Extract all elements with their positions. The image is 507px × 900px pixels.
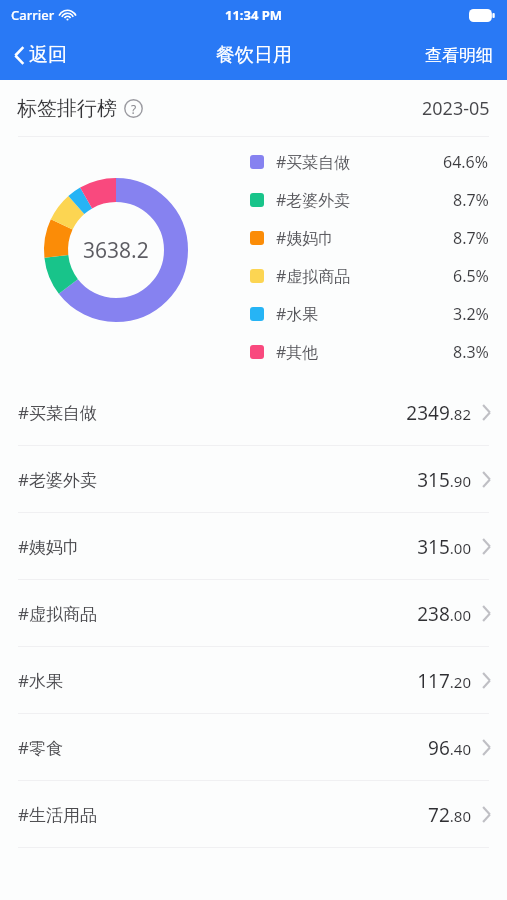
staticText: 2023-05 — [422, 96, 490, 121]
staticText: ? — [131, 101, 137, 117]
button[interactable]: 帮助 — [124, 99, 143, 118]
button[interactable]: #虚拟商品 — [0, 580, 507, 647]
button[interactable]: 查看明细 — [413, 39, 507, 72]
staticText: 2349.82 — [406, 400, 471, 426]
button[interactable]: #买菜自做 — [0, 379, 507, 446]
staticText: #姨妈巾 — [276, 227, 453, 249]
staticText: 11:34 PM — [225, 6, 283, 24]
button[interactable]: #水果 — [0, 647, 507, 714]
staticText: Carrier — [11, 6, 55, 24]
staticText: 238.00 — [417, 601, 471, 627]
button[interactable]: #生活用品 — [0, 781, 507, 848]
staticText: #水果 — [276, 303, 453, 325]
button[interactable]: 返回 — [0, 37, 79, 73]
staticText: #其他 — [276, 341, 453, 363]
staticText: 64.6% — [443, 151, 489, 173]
button[interactable]: #零食 — [0, 714, 507, 781]
button[interactable]: #姨妈巾 — [0, 513, 507, 580]
staticText: #买菜自做 — [18, 401, 406, 424]
staticText: #零食 — [18, 736, 428, 759]
staticText: #买菜自做 — [276, 151, 443, 173]
staticText: 117.20 — [417, 668, 471, 694]
staticText: #水果 — [18, 669, 417, 692]
staticText: 3638.2 — [83, 236, 149, 265]
staticText: 标签排行榜 — [17, 96, 117, 121]
staticText: #虚拟商品 — [276, 265, 453, 287]
staticText: 查看明细 — [425, 45, 493, 66]
staticText: 96.40 — [428, 735, 471, 761]
staticText: 8.3% — [453, 341, 489, 363]
staticText: 6.5% — [453, 265, 489, 287]
staticText: 8.7% — [453, 227, 489, 249]
staticText: #老婆外卖 — [18, 468, 417, 491]
staticText: 315.90 — [417, 467, 471, 493]
staticText: #姨妈巾 — [18, 535, 417, 558]
staticText: 8.7% — [453, 189, 489, 211]
staticText: #虚拟商品 — [18, 602, 417, 625]
staticText: 3.2% — [453, 303, 489, 325]
staticText: 72.80 — [428, 802, 471, 828]
staticText: 餐饮日用 — [216, 43, 292, 67]
staticText: 返回 — [29, 43, 67, 67]
button[interactable]: #老婆外卖 — [0, 446, 507, 513]
staticText: #老婆外卖 — [276, 189, 453, 211]
staticText: 315.00 — [417, 534, 471, 560]
staticText: #生活用品 — [18, 803, 428, 826]
